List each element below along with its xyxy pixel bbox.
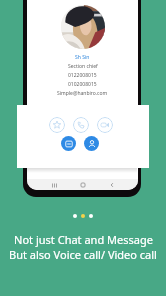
staticText: Not just Chat and Message bbox=[14, 232, 153, 247]
button[interactable]: Contact bbox=[84, 136, 99, 151]
button[interactable]: Home bbox=[78, 180, 88, 190]
staticText: Section chief bbox=[68, 63, 98, 70]
staticText: 0102008015 bbox=[68, 81, 97, 88]
staticText: Sh Sin bbox=[75, 54, 90, 61]
button[interactable]: Voice call bbox=[73, 117, 89, 133]
staticText: 0122008015 bbox=[68, 72, 97, 79]
button[interactable]: Favourite bbox=[49, 117, 65, 133]
staticText: Simple@hanbiro.com bbox=[57, 90, 108, 97]
staticText: But also Voice call/ Video call bbox=[9, 247, 157, 262]
button[interactable]: Back bbox=[107, 180, 117, 190]
button[interactable]: Message bbox=[61, 136, 76, 151]
button[interactable]: Recents bbox=[49, 180, 59, 190]
button[interactable]: Video call bbox=[97, 117, 113, 133]
